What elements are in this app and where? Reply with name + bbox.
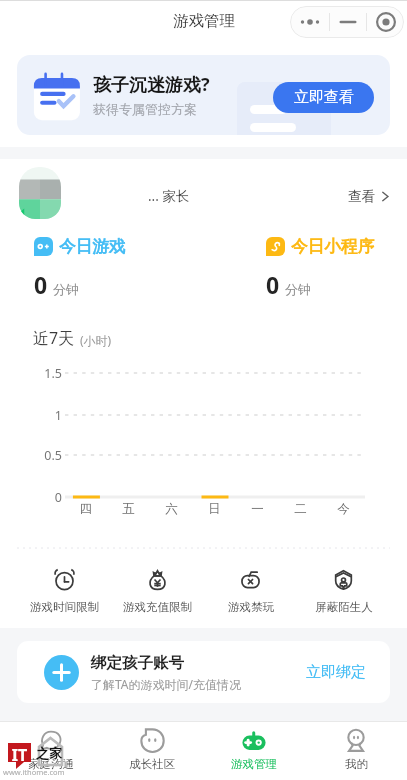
button[interactable]: 绑定孩子账号 [17,641,390,703]
button[interactable]: 游戏时间限制 [17,564,111,618]
staticText: 游戏管理 [231,757,277,771]
staticText: 游戏管理 [173,11,235,31]
button[interactable]: 立即绑定 [306,663,366,682]
staticText: 查看 [348,188,375,205]
staticText: www.ithome.com [3,767,65,777]
staticText: 游戏禁玩 [228,600,274,614]
staticText: 0 [266,269,280,300]
button[interactable]: 我的 [305,727,407,771]
button[interactable]: 游戏管理 [203,727,305,771]
staticText: 屏蔽陌生人 [315,600,373,614]
staticText: 游戏充值限制 [123,600,192,614]
button[interactable]: Minimize [330,6,366,38]
button[interactable]: 屏蔽陌生人 [297,564,390,618]
button[interactable]: 今日小程序 [266,236,374,300]
staticText: 今日小程序 [291,236,374,257]
button[interactable]: 游戏禁玩 [204,564,297,618]
staticText: ... 家长 [148,187,190,205]
staticText: 游戏时间限制 [30,600,99,614]
button[interactable]: ... 家长 [0,160,407,232]
staticText: 分钟 [285,281,311,297]
staticText: 今日游戏 [59,236,126,257]
button[interactable]: 游戏充值限制 [111,564,204,618]
button[interactable]: 查看 [348,188,391,205]
staticText: 立即绑定 [306,663,366,682]
staticText: 家庭沟通 [28,757,74,771]
staticText: 近7天 [33,327,75,349]
staticText: 绑定孩子账号 [91,653,184,673]
staticText: 了解TA的游戏时间/充值情况 [91,676,241,692]
staticText: 分钟 [53,281,79,297]
staticText: 0 [0,489,62,506]
button[interactable]: Close [367,6,404,38]
staticText: 六 [150,501,193,517]
staticText: 今 [322,501,365,517]
staticText: 二 [279,501,322,517]
staticText: 五 [107,501,150,517]
staticText: IT [8,744,31,766]
button[interactable]: 成长社区 [101,727,203,771]
staticText: 0.5 [0,447,62,464]
button[interactable]: 立即查看 [273,82,374,113]
staticText: 成长社区 [129,757,175,771]
button[interactable]: 孩子沉迷游戏? [17,55,390,135]
staticText: 获得专属管控方案 [93,101,197,117]
staticText: 一 [236,501,279,517]
staticText: 立即查看 [294,88,354,107]
staticText: 四 [65,501,107,517]
button[interactable]: 家庭沟通 [0,727,101,771]
staticText: 之家 [36,745,62,761]
staticText: 日 [193,501,236,517]
staticText: 0 [34,269,48,300]
staticText: 我的 [345,757,368,771]
button[interactable]: More [290,6,329,38]
staticText: (小时) [80,332,112,348]
button[interactable]: 今日游戏 [34,236,126,300]
staticText: 1 [0,407,62,424]
staticText: 孩子沉迷游戏? [93,72,210,97]
staticText: 1.5 [0,365,62,382]
